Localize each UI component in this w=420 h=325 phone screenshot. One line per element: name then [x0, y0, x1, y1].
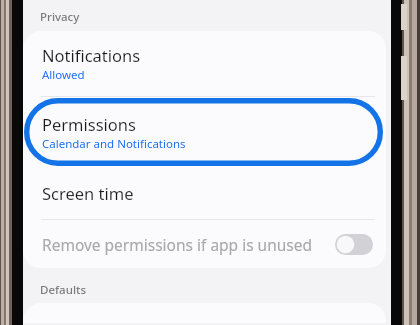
staticText: Permissions — [42, 113, 136, 135]
staticText: Defaults — [40, 282, 86, 298]
button[interactable]: Remove permissions if app is unused — [335, 234, 373, 255]
staticText: Notifications — [42, 44, 141, 66]
staticText: Remove permissions if app is unused — [42, 234, 313, 255]
staticText: Allowed — [42, 67, 85, 83]
button[interactable]: Notifications — [23, 31, 386, 96]
staticText: Privacy — [40, 9, 80, 25]
button[interactable]: Remove permissions if app is unused — [23, 220, 386, 268]
staticText: Calendar and Notifications — [42, 136, 186, 152]
button[interactable]: Permissions — [23, 97, 386, 167]
staticText: Screen time — [42, 182, 134, 204]
button[interactable]: Screen time — [23, 167, 386, 219]
